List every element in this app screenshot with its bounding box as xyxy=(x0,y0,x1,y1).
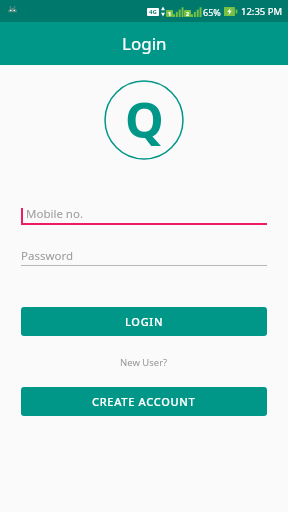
button[interactable]: New User? xyxy=(114,354,174,371)
staticText: 2 xyxy=(186,10,190,17)
button[interactable]: Password xyxy=(21,245,267,265)
button[interactable]: Mobile no. xyxy=(21,199,267,223)
staticText: Password xyxy=(21,248,74,264)
staticText: 1 xyxy=(168,10,172,17)
staticText: Login xyxy=(122,32,167,55)
staticText: 12:35 PM xyxy=(241,5,283,18)
staticText: Q xyxy=(125,86,164,153)
staticText: Mobile no. xyxy=(26,206,84,222)
staticText: CREATE ACCOUNT xyxy=(92,394,196,409)
staticText: 65% xyxy=(203,6,221,18)
staticText: 4G xyxy=(149,8,157,16)
button[interactable]: CREATE ACCOUNT xyxy=(21,387,267,416)
button[interactable]: LOGIN xyxy=(21,307,267,336)
staticText: New User? xyxy=(120,356,168,369)
staticText: LOGIN xyxy=(125,314,164,329)
